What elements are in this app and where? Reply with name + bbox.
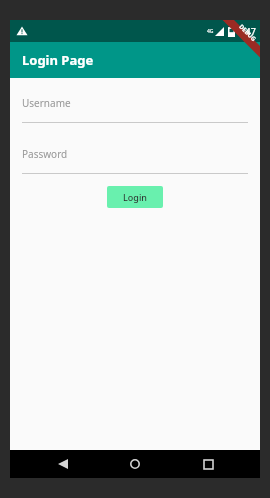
button[interactable]: Home — [115, 450, 155, 478]
staticText: DEBUG — [237, 23, 258, 43]
staticText: Login Page — [22, 51, 94, 69]
button[interactable]: Recent apps — [188, 450, 228, 478]
staticText: Password — [22, 147, 68, 161]
staticText: Username — [22, 96, 71, 110]
staticText: Login — [123, 191, 147, 203]
button[interactable]: Password — [22, 147, 248, 174]
staticText: 4G — [207, 28, 214, 35]
button[interactable]: Back — [43, 450, 83, 478]
staticText: 5:47 — [238, 25, 256, 37]
button[interactable]: Username — [22, 96, 248, 123]
button[interactable]: Login — [107, 186, 163, 208]
